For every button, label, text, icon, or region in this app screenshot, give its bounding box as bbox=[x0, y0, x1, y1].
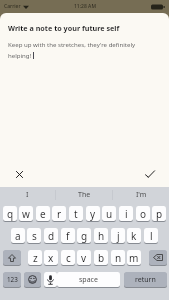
staticText: m bbox=[129, 251, 139, 265]
button[interactable]: n bbox=[111, 250, 125, 265]
staticText: z bbox=[33, 251, 38, 265]
button[interactable]: 123 bbox=[3, 272, 21, 287]
button[interactable]: m bbox=[127, 250, 141, 265]
button[interactable] bbox=[24, 272, 41, 287]
button[interactable]: r bbox=[52, 206, 66, 221]
button[interactable]: e bbox=[36, 206, 50, 221]
button[interactable]: p bbox=[152, 206, 166, 221]
button[interactable]: u bbox=[102, 206, 116, 221]
staticText: x bbox=[48, 251, 54, 265]
staticText: helping! bbox=[8, 51, 32, 59]
button[interactable]: t bbox=[69, 206, 83, 221]
staticText: o bbox=[140, 207, 147, 221]
button[interactable]: h bbox=[94, 228, 108, 243]
staticText: space bbox=[79, 275, 98, 285]
button[interactable] bbox=[149, 250, 167, 265]
staticText: h bbox=[98, 229, 105, 243]
button[interactable]: o bbox=[136, 206, 150, 221]
staticText: a bbox=[15, 229, 21, 243]
staticText: t bbox=[74, 207, 78, 221]
button[interactable]: i bbox=[119, 206, 133, 221]
staticText: e bbox=[40, 207, 46, 221]
staticText: 123 bbox=[7, 275, 18, 284]
button[interactable]: l bbox=[144, 228, 158, 243]
button[interactable]: k bbox=[127, 228, 141, 243]
button[interactable]: The bbox=[56, 187, 112, 203]
button[interactable]: w bbox=[19, 206, 33, 221]
staticText: Keep up with the stretches, they're defi… bbox=[8, 40, 136, 48]
button[interactable]: I bbox=[0, 187, 55, 203]
staticText: d bbox=[48, 229, 55, 243]
button[interactable]: space bbox=[57, 272, 120, 287]
staticText: I bbox=[26, 190, 29, 200]
staticText: r bbox=[57, 207, 62, 221]
button[interactable] bbox=[13, 168, 25, 180]
button[interactable] bbox=[3, 250, 21, 265]
button[interactable]: g bbox=[77, 228, 91, 243]
staticText: y bbox=[90, 207, 96, 221]
staticText: g bbox=[81, 229, 88, 243]
button[interactable]: f bbox=[61, 228, 75, 243]
staticText: s bbox=[32, 229, 37, 243]
staticText: n bbox=[115, 251, 122, 265]
staticText: The bbox=[78, 190, 91, 200]
staticText: f bbox=[66, 229, 70, 243]
staticText: j bbox=[117, 229, 120, 243]
staticText: v bbox=[81, 251, 87, 265]
button[interactable]: x bbox=[44, 250, 58, 265]
staticText: k bbox=[131, 229, 137, 243]
button[interactable] bbox=[144, 168, 156, 180]
button[interactable]: a bbox=[11, 228, 25, 243]
button[interactable]: j bbox=[111, 228, 125, 243]
button[interactable]: c bbox=[61, 250, 75, 265]
button[interactable]: return bbox=[124, 272, 167, 287]
button[interactable]: v bbox=[77, 250, 91, 265]
staticText: q bbox=[7, 207, 14, 221]
button[interactable]: y bbox=[86, 206, 100, 221]
button[interactable]: q bbox=[3, 206, 17, 221]
staticText: return bbox=[135, 275, 156, 285]
staticText: p bbox=[156, 207, 163, 221]
staticText: b bbox=[98, 251, 105, 265]
staticText: Carrier bbox=[4, 3, 21, 10]
staticText: u bbox=[106, 207, 113, 221]
button[interactable]: I'm bbox=[113, 187, 169, 203]
button[interactable] bbox=[44, 272, 57, 287]
button[interactable]: z bbox=[28, 250, 42, 265]
staticText: i bbox=[125, 207, 128, 221]
staticText: Write a note to your future self bbox=[8, 23, 120, 33]
staticText: c bbox=[66, 251, 71, 265]
button[interactable]: b bbox=[94, 250, 108, 265]
staticText: l bbox=[150, 229, 153, 243]
button[interactable]: s bbox=[27, 228, 41, 243]
staticText: I'm bbox=[136, 190, 147, 200]
staticText: w bbox=[22, 207, 30, 221]
button[interactable]: d bbox=[44, 228, 58, 243]
staticText: 11:28 AM bbox=[74, 3, 96, 10]
